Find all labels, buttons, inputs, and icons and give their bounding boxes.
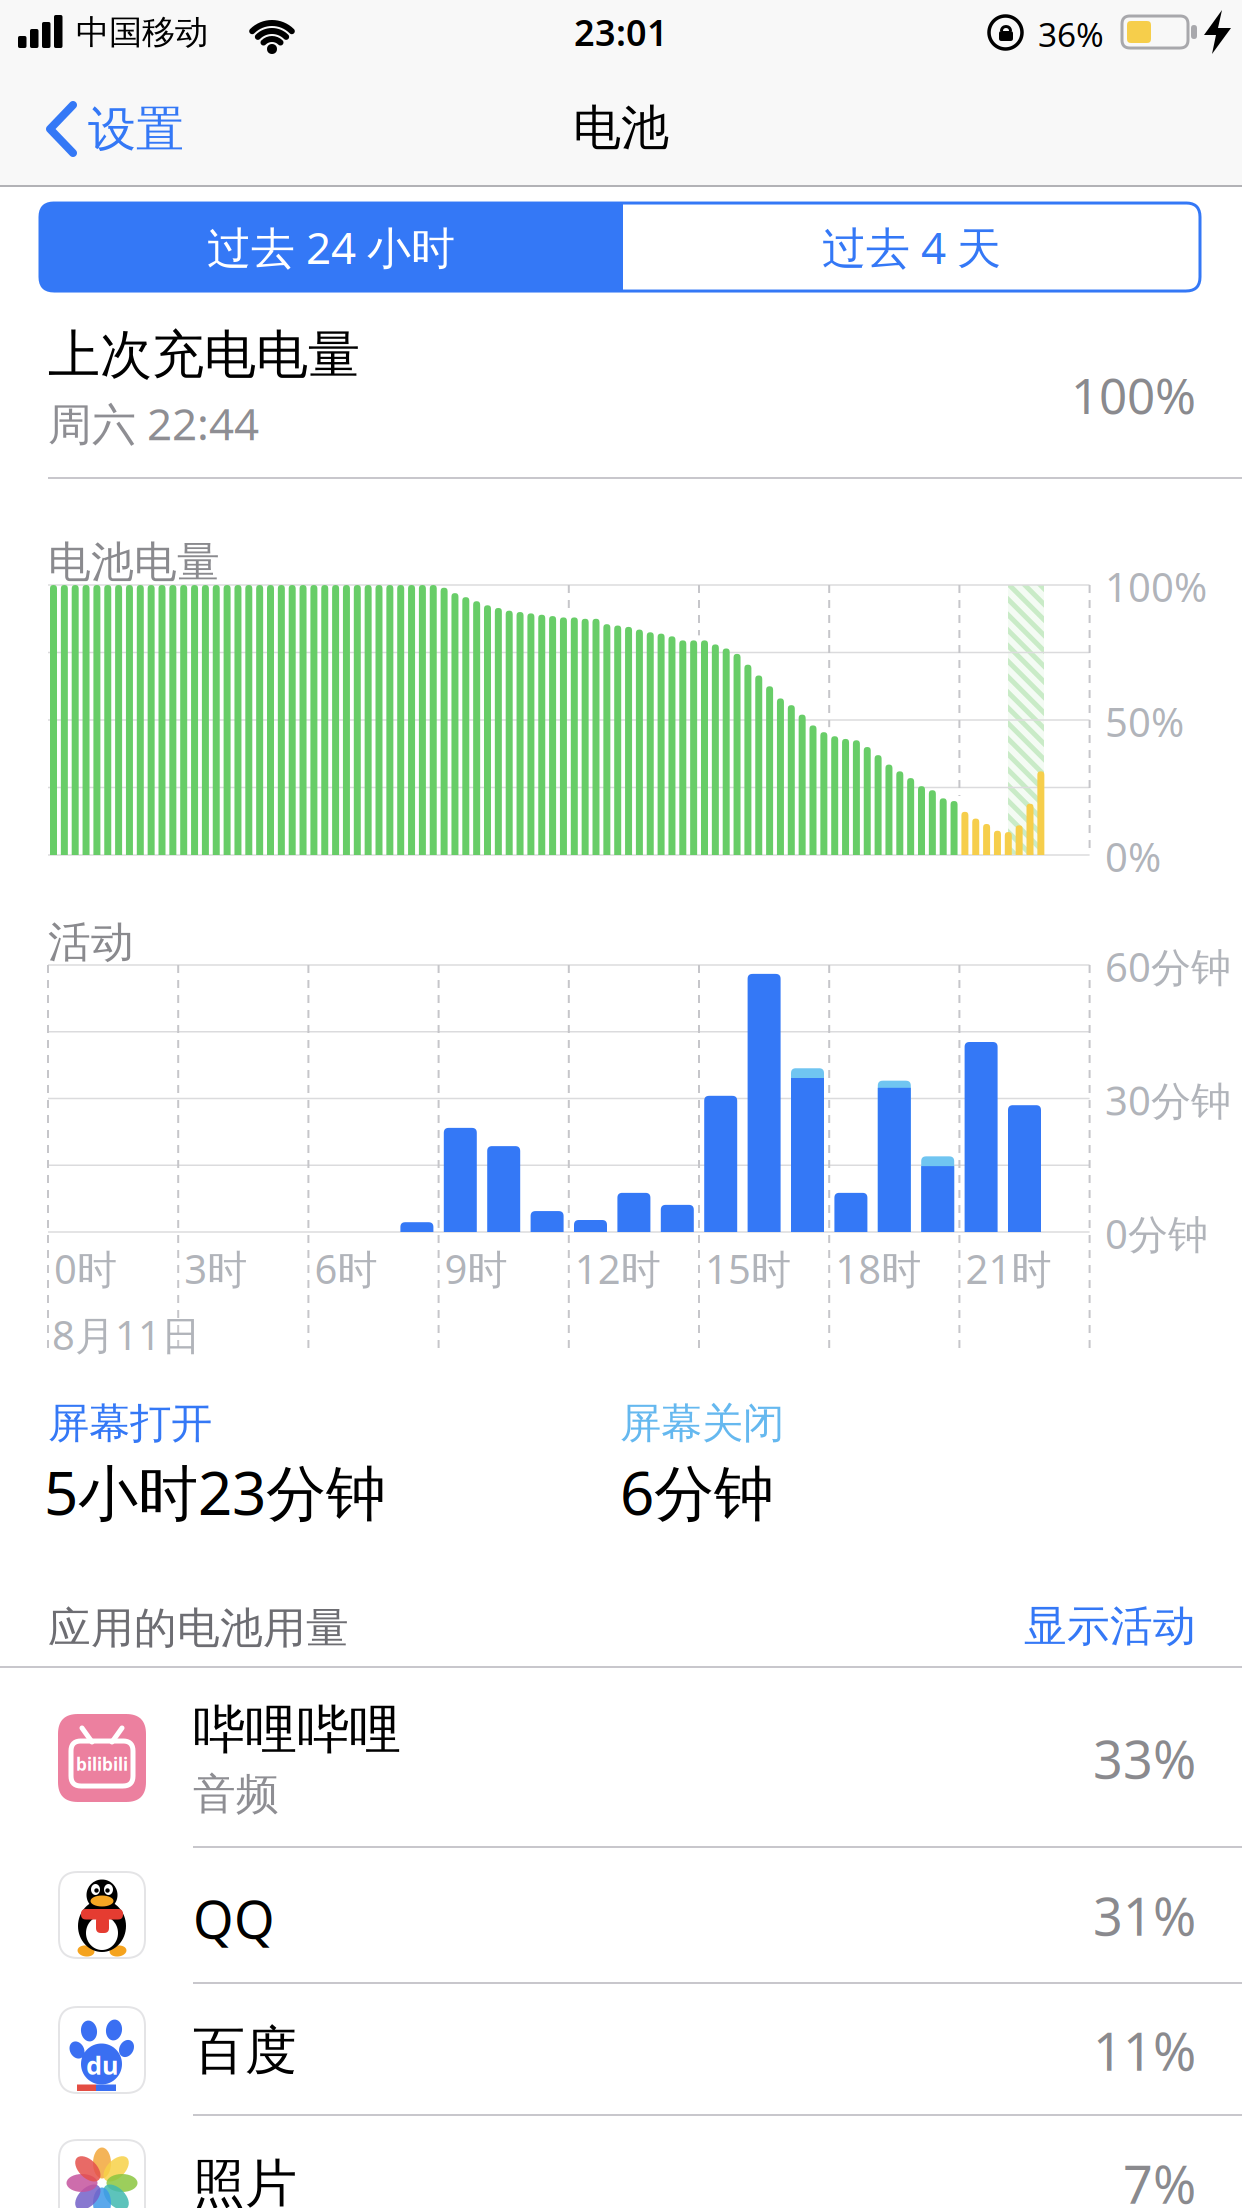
staticText: 30分钟 — [1105, 1073, 1231, 1127]
staticText: 9时 — [445, 1242, 508, 1295]
button[interactable]: 设置 — [40, 95, 250, 175]
staticText: 8月11日 — [52, 1308, 201, 1361]
staticText: 中国移动 — [76, 12, 208, 53]
staticText: 36% — [1038, 12, 1104, 56]
staticText: 活动 — [48, 916, 134, 968]
staticText: 100% — [1071, 362, 1196, 427]
staticText: 屏幕打开 — [48, 1398, 212, 1449]
staticText: 过去 24 小时 — [207, 218, 455, 276]
staticText: du — [86, 2048, 118, 2082]
staticText: 50% — [1105, 695, 1184, 748]
staticText: 60分钟 — [1105, 940, 1231, 993]
staticText: 0分钟 — [1105, 1207, 1208, 1260]
staticText: 电池电量 — [48, 536, 220, 588]
staticText: 15时 — [705, 1242, 791, 1295]
button[interactable]: 过去 24 小时 — [40, 203, 623, 291]
staticText: 设置 — [88, 100, 184, 159]
button[interactable]: QQ — [0, 1848, 1242, 1982]
staticText: 11% — [1093, 2016, 1196, 2085]
staticText: 屏幕关闭 — [620, 1398, 784, 1449]
staticText: 18时 — [835, 1242, 921, 1295]
staticText: 电池 — [573, 98, 669, 157]
button[interactable]: 过去 4 天 — [623, 203, 1200, 291]
staticText: 上次充电电量 — [48, 323, 360, 387]
staticText: 应用的电池用量 — [48, 1602, 349, 1654]
staticText: 照片 — [193, 2152, 297, 2208]
staticText: 哔哩哔哩 — [193, 1698, 401, 1762]
staticText: 3时 — [184, 1242, 247, 1295]
staticText: 100% — [1105, 560, 1207, 613]
staticText: 过去 4 天 — [822, 218, 1001, 276]
staticText: 7% — [1123, 2149, 1196, 2208]
staticText: 音频 — [193, 1768, 279, 1820]
staticText: 周六 22:44 — [48, 394, 259, 452]
staticText: 0时 — [54, 1242, 117, 1295]
staticText: 6时 — [314, 1242, 377, 1295]
staticText: 31% — [1093, 1881, 1196, 1950]
staticText: 0% — [1105, 830, 1161, 883]
staticText: 显示活动 — [1024, 1600, 1196, 1652]
button[interactable]: 照片 — [0, 2116, 1242, 2208]
staticText: 33% — [1093, 1724, 1196, 1793]
staticText: QQ — [193, 1884, 275, 1953]
staticText: bilibili — [76, 1752, 128, 1775]
staticText: 21时 — [965, 1242, 1051, 1295]
button[interactable]: bilibili — [0, 1668, 1242, 1848]
button[interactable]: du — [0, 1984, 1242, 2116]
staticText: 6分钟 — [620, 1452, 774, 1532]
button[interactable]: 显示活动 — [1024, 1600, 1196, 1652]
staticText: 百度 — [193, 2019, 297, 2083]
staticText: 12时 — [575, 1242, 661, 1295]
staticText: 5小时23分钟 — [44, 1452, 386, 1532]
staticText: 23:01 — [574, 8, 668, 56]
